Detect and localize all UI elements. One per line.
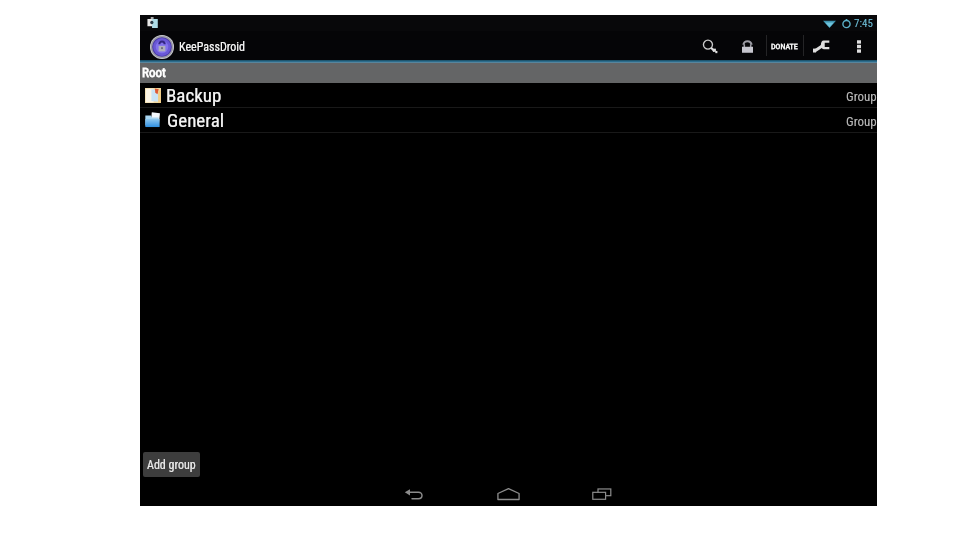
- button[interactable]: More options: [840, 31, 877, 60]
- staticText: DONATE: [771, 42, 798, 51]
- staticText: KeePassDroid: [179, 40, 246, 54]
- staticText: Group: [846, 89, 877, 104]
- staticText: 7:45: [854, 17, 873, 30]
- button[interactable]: DONATE: [766, 31, 803, 60]
- button[interactable]: Root: [140, 63, 877, 83]
- button[interactable]: General: [140, 108, 877, 132]
- button[interactable]: Backup: [140, 83, 877, 107]
- button[interactable]: KeePassDroid: [140, 34, 254, 58]
- staticText: Group: [846, 114, 877, 129]
- button[interactable]: Search: [692, 31, 729, 60]
- staticText: Backup: [166, 84, 222, 106]
- staticText: Root: [142, 65, 166, 80]
- staticText: General: [167, 109, 225, 131]
- button[interactable]: Tools: [803, 31, 840, 60]
- button[interactable]: Back: [394, 480, 434, 506]
- staticText: Add group: [147, 458, 196, 472]
- button[interactable]: Recent apps: [582, 480, 622, 506]
- button[interactable]: Add group: [143, 452, 200, 477]
- button[interactable]: Home: [488, 480, 528, 506]
- button[interactable]: Lock database: [729, 31, 766, 60]
